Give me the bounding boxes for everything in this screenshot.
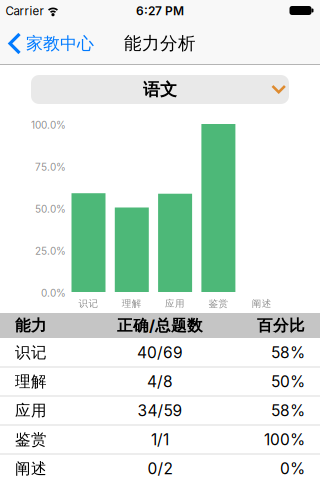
staticText: 50%: [271, 372, 305, 391]
staticText: 应用: [165, 297, 185, 309]
staticText: 百分比: [257, 316, 305, 335]
staticText: 6:27 PM: [136, 4, 184, 18]
staticText: 识记: [78, 297, 98, 309]
staticText: 家教中心: [26, 33, 94, 54]
staticText: 阐述: [252, 297, 272, 309]
staticText: 40/69: [137, 343, 183, 362]
staticText: Carrier: [5, 4, 43, 18]
staticText: 理解: [122, 297, 142, 309]
staticText: 100%: [264, 430, 305, 449]
staticText: 识记: [15, 343, 47, 362]
staticText: 语文: [143, 79, 177, 100]
staticText: 0%: [280, 459, 305, 478]
button[interactable]: Back: [10, 33, 94, 54]
staticText: 58%: [271, 343, 305, 362]
staticText: 鉴赏: [208, 297, 228, 309]
staticText: 100.0%: [31, 119, 66, 131]
staticText: 正确/总题数: [117, 316, 203, 335]
staticText: 应用: [15, 401, 47, 420]
staticText: 4/8: [147, 372, 173, 391]
staticText: 0/2: [147, 459, 172, 478]
staticText: 理解: [15, 372, 47, 391]
staticText: 34/59: [137, 401, 182, 420]
staticText: 75.0%: [35, 161, 66, 173]
staticText: 能力分析: [124, 32, 196, 54]
staticText: 50.0%: [35, 203, 66, 215]
staticText: 25.0%: [35, 245, 66, 257]
staticText: 1/1: [151, 430, 169, 449]
button[interactable]: 语文: [31, 75, 289, 104]
staticText: 鉴赏: [15, 430, 47, 449]
staticText: 58%: [271, 401, 305, 420]
staticText: 阐述: [15, 459, 47, 478]
staticText: 0.0%: [41, 287, 66, 299]
staticText: 能力: [15, 316, 47, 335]
